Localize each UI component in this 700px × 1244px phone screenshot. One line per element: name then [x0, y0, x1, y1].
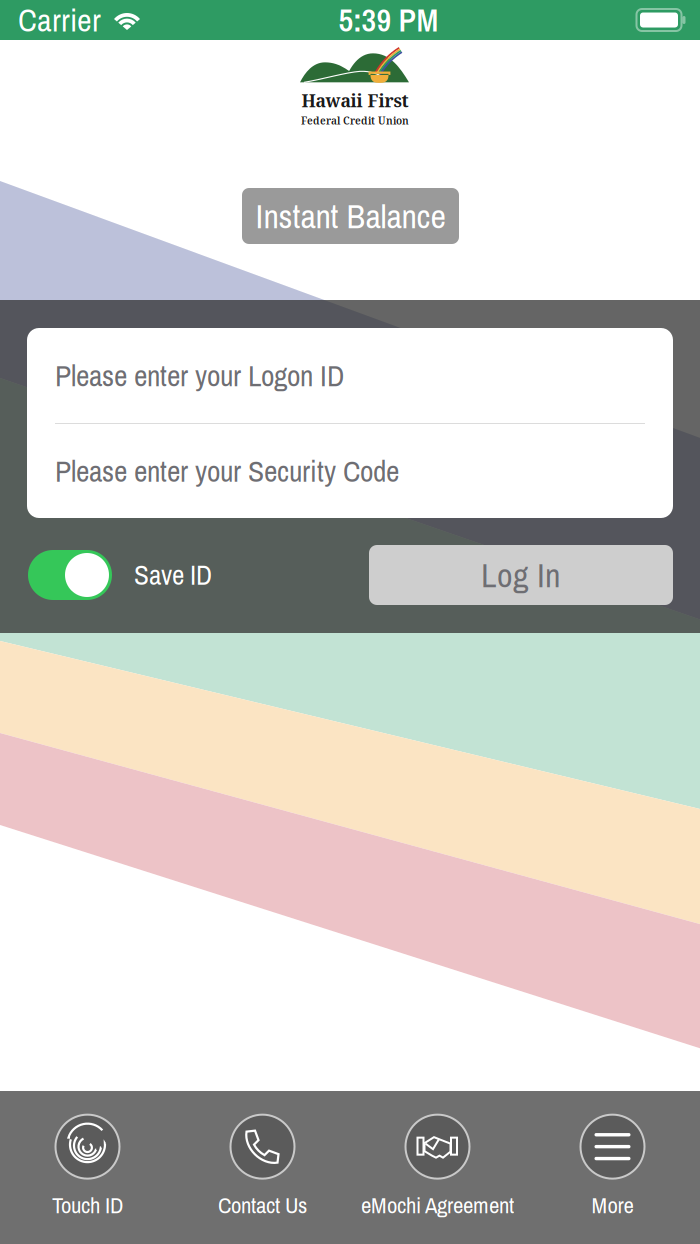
staticText: More: [591, 1190, 633, 1220]
staticText: eMochi Agreement: [361, 1190, 514, 1220]
staticText: Touch ID: [52, 1190, 123, 1220]
staticText: Hawaii First: [301, 87, 408, 113]
staticText: Instant Balance: [255, 193, 445, 239]
staticText: Please enter your Logon ID: [55, 356, 344, 395]
button[interactable]: eMochi Agreement: [350, 1112, 525, 1222]
button[interactable]: Instant Balance: [242, 188, 459, 244]
staticText: 5:39 PM: [338, 0, 438, 41]
staticText: Contact Us: [218, 1190, 307, 1220]
staticText: Federal Credit Union: [301, 113, 409, 128]
staticText: Save ID: [134, 557, 212, 593]
button[interactable]: Log In: [369, 545, 673, 605]
button[interactable]: More: [525, 1112, 700, 1222]
staticText: Carrier: [18, 0, 101, 41]
button[interactable]: Touch ID: [0, 1112, 175, 1222]
staticText: Log In: [481, 552, 561, 598]
button[interactable]: Contact Us: [175, 1112, 350, 1222]
button[interactable]: Save ID: [28, 550, 288, 600]
staticText: Please enter your Security Code: [55, 451, 399, 491]
